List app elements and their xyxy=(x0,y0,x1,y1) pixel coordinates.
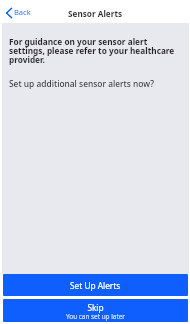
staticText: Back xyxy=(14,7,31,17)
staticText: Skip xyxy=(87,302,104,313)
button[interactable]: Set Up Alerts xyxy=(3,274,188,296)
staticText: Set Up Alerts xyxy=(70,280,121,291)
staticText: You can set up later xyxy=(66,312,125,321)
staticText: Sensor Alerts xyxy=(68,8,123,19)
staticText: Set up additional sensor alerts now? xyxy=(9,78,184,89)
staticText: For guidance on your sensor alert settin… xyxy=(9,36,181,66)
button[interactable]: Back xyxy=(0,0,36,23)
button[interactable]: Skip xyxy=(3,299,188,322)
